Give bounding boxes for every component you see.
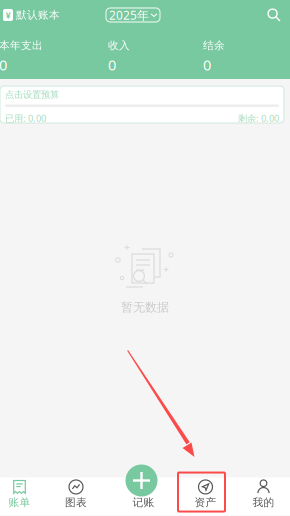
- button[interactable]: 搜索: [267, 8, 281, 22]
- staticText: 收入: [108, 39, 130, 52]
- staticText: 剩余: 0.00: [238, 112, 279, 124]
- staticText: 记账: [132, 496, 154, 509]
- button[interactable]: 图表: [39, 477, 113, 515]
- button[interactable]: 点击设置预算: [0, 86, 284, 123]
- button[interactable]: 资产: [174, 477, 237, 515]
- staticText: 我的: [252, 496, 274, 509]
- staticText: 资产: [194, 496, 216, 509]
- staticText: 暂无数据: [121, 300, 169, 315]
- staticText: 本年支出: [0, 39, 43, 52]
- staticText: 0: [203, 55, 211, 75]
- button[interactable]: 记账: [125, 464, 157, 496]
- staticText: 默认账本: [16, 8, 60, 21]
- button[interactable]: ¥: [0, 8, 60, 21]
- button[interactable]: 记账: [113, 477, 174, 515]
- button[interactable]: 我的: [237, 477, 290, 515]
- button[interactable]: 账单: [0, 477, 39, 515]
- staticText: 已用: 0.00: [5, 112, 46, 124]
- button[interactable]: 2025年: [106, 8, 160, 22]
- staticText: 图表: [65, 496, 87, 509]
- staticText: 0: [108, 55, 116, 75]
- staticText: ¥: [5, 9, 10, 21]
- staticText: 结余: [203, 39, 225, 52]
- staticText: 账单: [8, 496, 30, 509]
- staticText: 点击设置预算: [5, 89, 59, 100]
- staticText: 0: [0, 55, 7, 75]
- staticText: 2025年: [109, 7, 149, 23]
